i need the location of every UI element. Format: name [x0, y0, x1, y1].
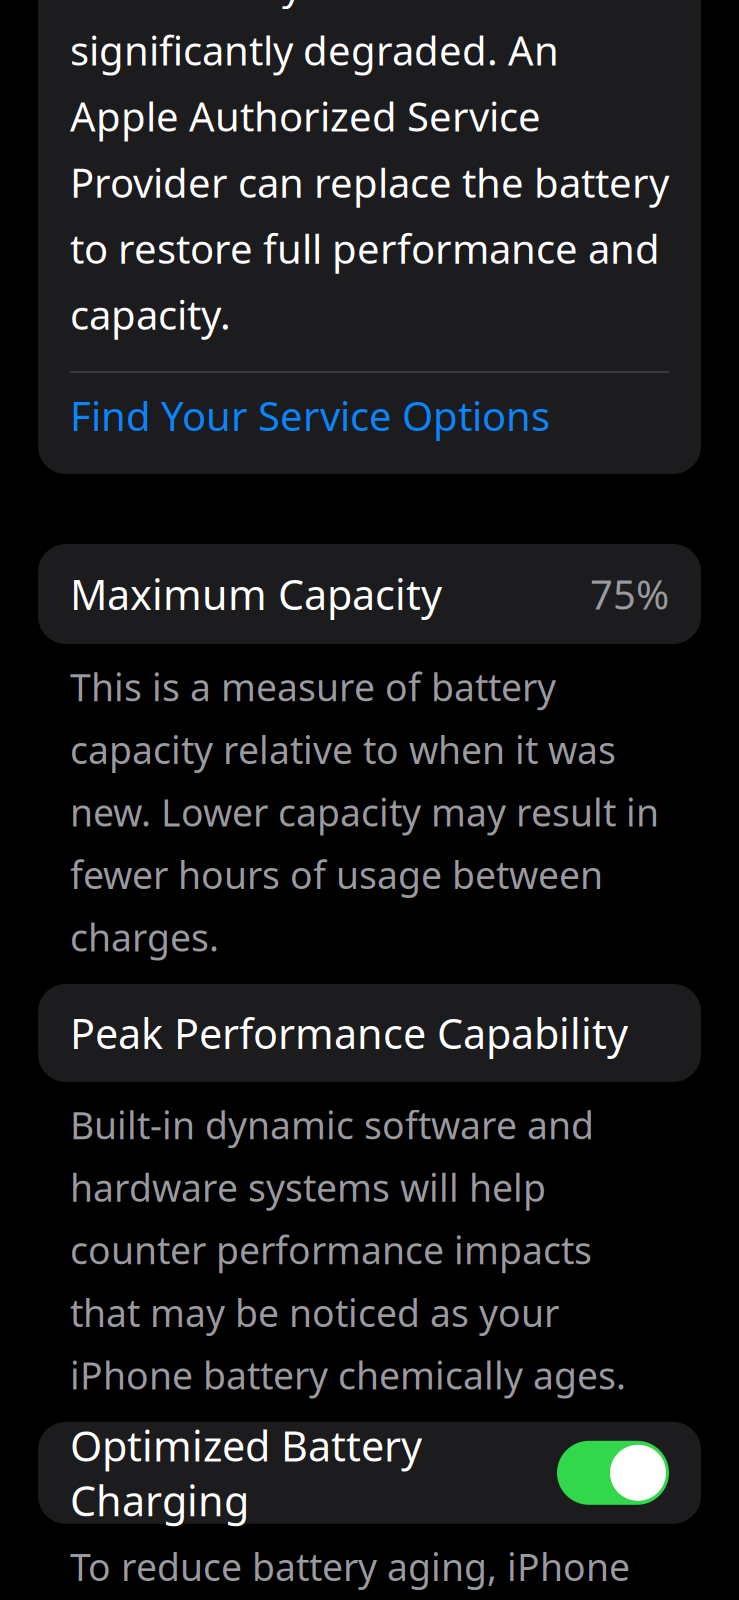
button[interactable]: Peak Performance Capability [38, 984, 701, 1082]
staticText: Maximum Capacity [70, 567, 442, 621]
staticText: Your battery’s health is significantly d… [70, 0, 669, 341]
button[interactable]: Maximum Capacity [38, 544, 701, 644]
button[interactable]: Optimized Battery Charging [38, 1422, 701, 1524]
staticText: Find Your Service Options [70, 389, 550, 442]
staticText: Built-in dynamic software and hardware s… [70, 1100, 626, 1400]
staticText: 75% [590, 567, 669, 621]
staticText: Optimized Battery Charging [70, 1418, 422, 1528]
button[interactable]: Find Your Service Options [70, 373, 669, 458]
staticText: To reduce battery aging, iPhone learns f… [70, 1542, 656, 1600]
staticText: Peak Performance Capability [70, 1005, 628, 1060]
staticText: This is a measure of battery capacity re… [70, 662, 659, 962]
